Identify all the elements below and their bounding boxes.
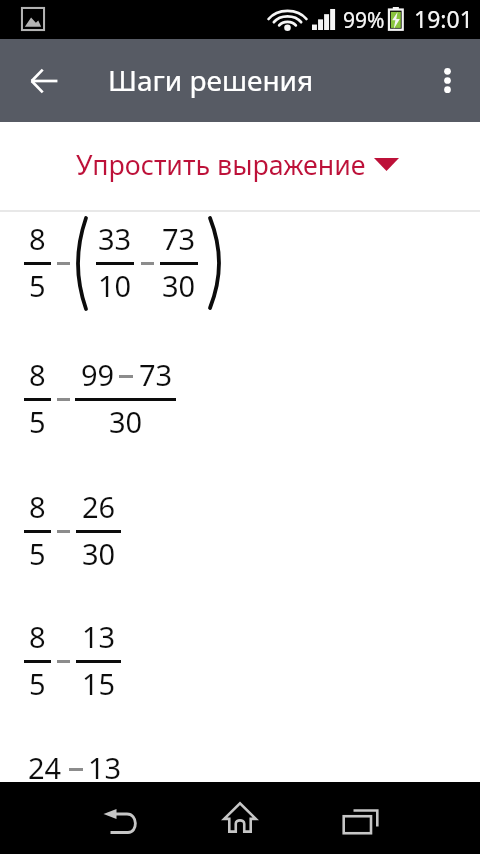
staticText: 99% — [343, 6, 385, 35]
staticText: 8 — [29, 355, 46, 394]
staticText: 5 — [29, 534, 46, 573]
staticText: 24 — [28, 748, 62, 787]
staticText: 5 — [29, 664, 46, 703]
staticText: Упростить выражение — [76, 146, 366, 183]
staticText: 8 — [29, 219, 46, 258]
staticText: 8 — [29, 617, 46, 656]
staticText: 5 — [29, 266, 46, 305]
button[interactable]: Recent apps — [323, 782, 397, 854]
button[interactable]: Back — [84, 782, 158, 854]
staticText: 26 — [82, 487, 116, 526]
staticText: 99 — [81, 355, 115, 394]
button[interactable]: Упростить выражение — [0, 122, 480, 209]
staticText: 33 — [98, 219, 132, 258]
button[interactable]: Back — [16, 53, 72, 109]
staticText: 15 — [82, 664, 116, 703]
staticText: 5 — [29, 402, 46, 441]
button[interactable]: More options — [419, 53, 475, 109]
button[interactable]: Home — [203, 782, 277, 854]
staticText: 30 — [109, 402, 143, 441]
staticText: 30 — [82, 534, 116, 573]
staticText: 8 — [29, 487, 46, 526]
staticText: 73 — [162, 219, 196, 258]
staticText: 13 — [88, 748, 122, 787]
staticText: 19:01 — [414, 3, 473, 34]
staticText: 73 — [139, 355, 173, 394]
staticText: 30 — [162, 266, 196, 305]
staticText: 10 — [98, 266, 132, 305]
staticText: Шаги решения — [108, 61, 314, 99]
staticText: 13 — [82, 617, 116, 656]
